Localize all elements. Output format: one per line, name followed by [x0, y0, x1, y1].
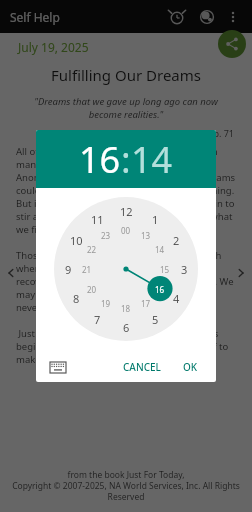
- staticText: 8: [73, 291, 80, 306]
- staticText: 19: [101, 298, 111, 309]
- staticText: :: [121, 135, 131, 184]
- staticText: 15: [160, 264, 170, 275]
- staticText: 00: [121, 225, 131, 236]
- button[interactable]: OK: [175, 356, 206, 378]
- button[interactable]: CANCEL: [117, 356, 167, 378]
- staticText: 16: [79, 135, 121, 184]
- button[interactable]: Alarm: [166, 6, 188, 28]
- staticText: All of us have dreams. Many of us gave u…: [16, 145, 236, 366]
- button[interactable]: Next day: [230, 262, 252, 284]
- staticText: Fulfilling Our Dreams: [0, 65, 252, 85]
- button[interactable]: More options: [224, 8, 242, 26]
- staticText: Basic Text, p. 71: [18, 127, 234, 139]
- staticText: 18: [121, 303, 131, 314]
- button[interactable]: Previous day: [0, 262, 22, 284]
- button[interactable]: 12: [54, 197, 198, 341]
- button[interactable]: Language: [196, 6, 218, 28]
- staticText: 20: [87, 284, 97, 295]
- staticText: 3: [181, 262, 188, 277]
- staticText: 5: [152, 312, 159, 327]
- staticText: OK: [183, 360, 198, 374]
- staticText: July 19, 2025: [18, 39, 89, 55]
- staticText: 9: [65, 262, 72, 277]
- staticText: 2: [173, 233, 180, 248]
- staticText: 14: [155, 244, 165, 255]
- staticText: 4: [173, 291, 180, 306]
- staticText: Self Help: [10, 9, 60, 25]
- staticText: 23: [101, 230, 111, 241]
- staticText: from the book Just For Today, Copyright …: [12, 469, 240, 502]
- staticText: 12: [120, 204, 133, 219]
- staticText: 16: [155, 284, 165, 295]
- staticText: 11: [91, 212, 104, 227]
- staticText: 7: [94, 312, 101, 327]
- button[interactable]: Share: [218, 30, 246, 58]
- button[interactable]: Switch to keyboard input: [46, 355, 70, 379]
- staticText: 21: [82, 264, 92, 275]
- staticText: 22: [87, 244, 97, 255]
- staticText: 13: [141, 230, 151, 241]
- staticText: 17: [141, 298, 151, 309]
- button[interactable]: 16: [79, 135, 121, 184]
- staticText: 14: [131, 135, 173, 184]
- staticText: "Dreams that we gave up long ago can now…: [18, 95, 234, 121]
- staticText: 10: [70, 233, 83, 248]
- staticText: 6: [123, 320, 130, 335]
- button[interactable]: 14: [131, 135, 173, 184]
- staticText: CANCEL: [123, 360, 161, 374]
- staticText: 1: [152, 212, 159, 227]
